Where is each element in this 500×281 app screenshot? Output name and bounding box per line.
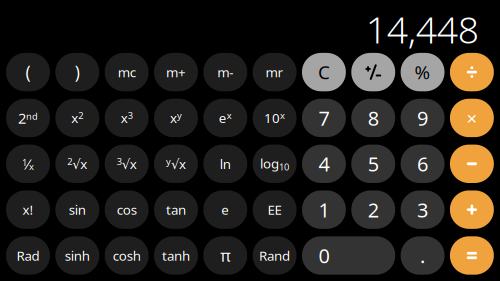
- staticText: y√x: [166, 155, 186, 173]
- button[interactable]: 1: [302, 190, 346, 229]
- staticText: mr: [266, 63, 284, 81]
- button[interactable]: 1⁄x: [6, 145, 50, 183]
- button[interactable]: Minus: [450, 145, 494, 183]
- button[interactable]: 2: [351, 190, 395, 229]
- staticText: 0: [318, 242, 329, 269]
- staticText: e: [221, 201, 229, 218]
- button[interactable]: ex: [203, 99, 247, 137]
- button[interactable]: Rand: [253, 236, 297, 275]
- button[interactable]: π: [203, 236, 247, 275]
- button[interactable]: ): [55, 53, 99, 91]
- staticText: 9: [417, 105, 428, 131]
- button[interactable]: y√x: [154, 145, 198, 183]
- staticText: mc: [118, 63, 136, 81]
- staticText: .: [420, 242, 425, 269]
- button[interactable]: tan: [154, 190, 198, 229]
- staticText: x3: [121, 109, 133, 127]
- button[interactable]: 6: [401, 145, 444, 183]
- button[interactable]: 2nd: [6, 99, 50, 137]
- staticText: tan: [166, 201, 186, 218]
- button[interactable]: 3: [401, 190, 444, 229]
- staticText: 14,448: [366, 4, 479, 54]
- button[interactable]: xy: [154, 99, 198, 137]
- staticText: ×: [466, 106, 477, 130]
- button[interactable]: 10x: [253, 99, 297, 137]
- staticText: 6: [417, 150, 428, 177]
- staticText: ): [75, 61, 80, 84]
- button[interactable]: %: [401, 53, 444, 91]
- staticText: xy: [170, 109, 182, 127]
- staticText: 3: [417, 196, 428, 223]
- button[interactable]: sinh: [55, 236, 99, 275]
- staticText: m+: [166, 63, 186, 81]
- staticText: 8: [368, 105, 379, 131]
- staticText: 1⁄x: [22, 154, 34, 174]
- button[interactable]: (: [6, 53, 50, 91]
- staticText: 1: [318, 196, 329, 223]
- staticText: m-: [217, 63, 233, 81]
- staticText: 2nd: [18, 108, 38, 128]
- staticText: 4: [318, 150, 329, 177]
- button[interactable]: C: [302, 53, 346, 91]
- staticText: 2: [368, 196, 379, 223]
- button[interactable]: x!: [6, 190, 50, 229]
- staticText: x2: [71, 109, 83, 127]
- staticText: log10: [260, 154, 289, 173]
- button[interactable]: EE: [253, 190, 297, 229]
- staticText: x!: [22, 201, 33, 218]
- staticText: %: [415, 60, 431, 84]
- staticText: π: [220, 245, 230, 266]
- button[interactable]: sin: [55, 190, 99, 229]
- button[interactable]: mr: [253, 53, 297, 91]
- staticText: 3√x: [117, 155, 137, 173]
- button[interactable]: 2√x: [55, 145, 99, 183]
- button[interactable]: 4: [302, 145, 346, 183]
- staticText: tanh: [162, 247, 190, 264]
- button[interactable]: Plus: [450, 190, 494, 229]
- staticText: Rad: [16, 247, 39, 264]
- button[interactable]: cosh: [105, 236, 149, 275]
- staticText: cos: [117, 201, 137, 218]
- button[interactable]: mc: [105, 53, 149, 91]
- staticText: ex: [219, 109, 232, 127]
- button[interactable]: cos: [105, 190, 149, 229]
- staticText: ln: [220, 155, 231, 173]
- staticText: cosh: [113, 247, 141, 264]
- button[interactable]: Multiply: [450, 99, 494, 137]
- button[interactable]: 8: [351, 99, 395, 137]
- staticText: (: [25, 61, 30, 84]
- button[interactable]: Plus Minus: [351, 53, 395, 91]
- staticText: EE: [268, 201, 282, 218]
- button[interactable]: Divide: [450, 53, 494, 91]
- button[interactable]: .: [401, 236, 444, 275]
- button[interactable]: ln: [203, 145, 247, 183]
- button[interactable]: 5: [351, 145, 395, 183]
- button[interactable]: log10: [253, 145, 297, 183]
- button[interactable]: Rad: [6, 236, 50, 275]
- staticText: 2√x: [67, 155, 87, 173]
- staticText: 10x: [264, 109, 285, 127]
- staticText: C: [318, 60, 330, 84]
- button[interactable]: tanh: [154, 236, 198, 275]
- button[interactable]: e: [203, 190, 247, 229]
- button[interactable]: 7: [302, 99, 346, 137]
- button[interactable]: Equals: [450, 236, 494, 275]
- button[interactable]: 9: [401, 99, 444, 137]
- button[interactable]: m+: [154, 53, 198, 91]
- button[interactable]: x2: [55, 99, 99, 137]
- staticText: sin: [69, 201, 86, 218]
- staticText: sinh: [65, 247, 90, 264]
- staticText: Rand: [259, 247, 290, 264]
- button[interactable]: 3√x: [105, 145, 149, 183]
- button[interactable]: x3: [105, 99, 149, 137]
- staticText: 5: [368, 150, 379, 177]
- staticText: 7: [318, 105, 329, 131]
- button[interactable]: 0: [302, 236, 395, 275]
- button[interactable]: m-: [203, 53, 247, 91]
